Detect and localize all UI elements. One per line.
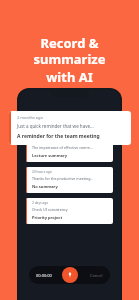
staticText: 2 months ago xyxy=(17,115,43,120)
staticText: Thanks for the productive meeting... xyxy=(32,176,94,181)
staticText: Lecture summary xyxy=(32,153,68,158)
staticText: with AI xyxy=(46,68,93,86)
staticText: Just a quick reminder that we have... xyxy=(17,123,94,129)
staticText: Record & summarize xyxy=(10,34,129,67)
button[interactable]: 23 hours ago xyxy=(26,167,113,193)
button[interactable]: 19 hours ago xyxy=(26,136,113,162)
staticText: No summary xyxy=(32,184,58,189)
button[interactable]: 00:00:00 xyxy=(29,266,110,284)
staticText: Check UI consistency xyxy=(32,207,68,212)
button[interactable]: 2 months ago xyxy=(9,111,131,145)
staticText: 2 days ago xyxy=(32,201,49,205)
button[interactable]: Record xyxy=(62,267,78,283)
staticText: Priority project xyxy=(32,215,63,220)
staticText: 23 hours ago xyxy=(32,170,52,174)
staticText: The importance of effective comm... xyxy=(32,145,93,150)
staticText: A reminder for the team meeting xyxy=(17,133,100,140)
button[interactable]: 2 days ago xyxy=(26,198,113,224)
staticText: 00:00:00 xyxy=(36,273,52,278)
staticText: Cancel xyxy=(90,273,103,278)
